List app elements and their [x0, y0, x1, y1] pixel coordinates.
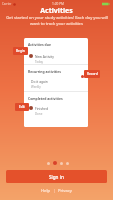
button[interactable]: Privacy — [56, 188, 74, 194]
button[interactable]: Edit — [15, 103, 29, 111]
staticText: Finished — [35, 106, 48, 110]
staticText: Record — [87, 72, 98, 76]
staticText: Today — [35, 60, 44, 64]
button[interactable]: Finished — [24, 105, 88, 117]
button[interactable]: Do it again — [24, 78, 88, 90]
button[interactable]: Page 2 — [53, 161, 57, 165]
staticText: Recurring activities — [28, 69, 61, 74]
button[interactable]: Page 1 — [47, 162, 50, 165]
staticText: Edit — [19, 105, 25, 109]
button[interactable]: Begin — [13, 47, 28, 55]
staticText: Activities — [40, 6, 73, 16]
staticText: Help — [41, 188, 51, 194]
button[interactable]: Page 4 — [66, 162, 69, 165]
staticText: Begin — [16, 49, 25, 53]
staticText: Completed activities — [28, 96, 63, 101]
staticText: | — [53, 188, 56, 194]
staticText: Activities due — [28, 42, 51, 47]
staticText: Sign in — [49, 174, 64, 180]
staticText: 1:20 PM — [52, 2, 65, 6]
staticText: want to track your activities — [30, 21, 83, 27]
button[interactable]: New Activity — [24, 53, 88, 65]
button[interactable]: Help — [39, 188, 53, 194]
button[interactable]: Record — [84, 70, 100, 78]
staticText: Done — [35, 112, 43, 116]
staticText: Do it again — [31, 79, 48, 83]
staticText: Weekly — [31, 85, 41, 89]
button[interactable]: Page 3 — [60, 162, 63, 165]
staticText: Privacy — [58, 188, 72, 194]
staticText: Carrier — [2, 2, 12, 6]
staticText: Get started on your study activities! Ea… — [6, 15, 108, 21]
button[interactable]: Sign in — [6, 170, 107, 183]
staticText: New Activity — [35, 54, 54, 58]
